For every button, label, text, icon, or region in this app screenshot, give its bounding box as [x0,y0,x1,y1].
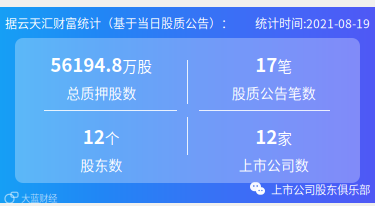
staticText: 12 [255,122,277,149]
staticText: 统计时间:2021-08-19 [255,14,370,32]
staticText: 上市公司数 [239,154,309,175]
staticText: 17 [255,50,277,77]
button[interactable]: 上市公司股东俱乐部 [250,181,370,197]
button[interactable]: 统计时间:2021-08-19 [255,14,370,32]
staticText: 大蓝财经 [21,191,57,204]
staticText: 56194.8 [50,50,122,77]
button[interactable]: 12 [15,112,187,184]
staticText: 万股 [122,55,152,76]
staticText: 总质押股数 [66,82,136,103]
button[interactable]: 17 [187,40,360,112]
staticText: 12 [83,122,105,149]
button[interactable]: 56194.8 [15,40,187,112]
button[interactable]: 大蓝财经 [5,191,57,204]
staticText: 股质公告笔数 [232,82,316,103]
staticText: 上市公司股东俱乐部 [271,181,370,197]
staticText: 个 [105,127,120,148]
button[interactable]: 12 [187,112,360,184]
staticText: 股东数 [80,154,122,175]
staticText: 据云天汇财富统计（基于当日股质公告）： [5,14,233,32]
staticText: 笔 [277,55,292,76]
staticText: 家 [277,127,292,148]
